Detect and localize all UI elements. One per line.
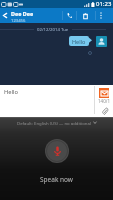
button[interactable]: Attach (100, 107, 109, 116)
staticText: Hello (72, 38, 86, 45)
staticText: Default: English (US) — no additional (17, 120, 91, 126)
button[interactable]: Send (99, 88, 109, 98)
staticText: 02/12/2014 Tue (37, 26, 69, 32)
staticText: Speak now (40, 175, 73, 184)
button[interactable]: Delete (79, 8, 92, 23)
button[interactable]: Hello (69, 36, 89, 46)
staticText: 140/1 (98, 98, 110, 104)
staticText: Hello (4, 88, 94, 96)
button[interactable]: More options (96, 8, 106, 23)
staticText: 123456 (11, 18, 26, 23)
staticText: 01:23 (96, 0, 112, 8)
button[interactable]: Back (0, 8, 9, 23)
button[interactable]: Default: English (US) — no additional (0, 117, 113, 128)
staticText: Dee Dee (11, 10, 34, 17)
button[interactable]: Microphone (45, 139, 69, 163)
button[interactable]: Call (63, 8, 76, 23)
